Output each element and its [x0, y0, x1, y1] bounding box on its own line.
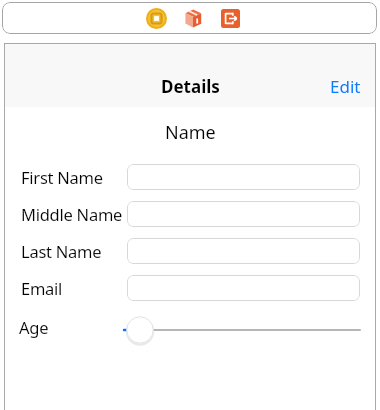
- staticText: Email: [21, 277, 63, 299]
- staticText: Name: [165, 120, 216, 145]
- button[interactable]: [127, 164, 360, 190]
- button[interactable]: Edit: [330, 75, 361, 98]
- button[interactable]: [123, 315, 361, 345]
- staticText: Age: [19, 316, 49, 338]
- staticText: First Name: [21, 166, 103, 188]
- button[interactable]: [127, 201, 360, 227]
- button[interactable]: [127, 238, 360, 264]
- staticText: Last Name: [21, 240, 102, 262]
- staticText: Middle Name: [21, 203, 123, 225]
- button[interactable]: [184, 9, 203, 28]
- button[interactable]: [147, 9, 166, 28]
- button[interactable]: [127, 275, 360, 301]
- staticText: Details: [161, 75, 220, 98]
- button[interactable]: [221, 9, 240, 28]
